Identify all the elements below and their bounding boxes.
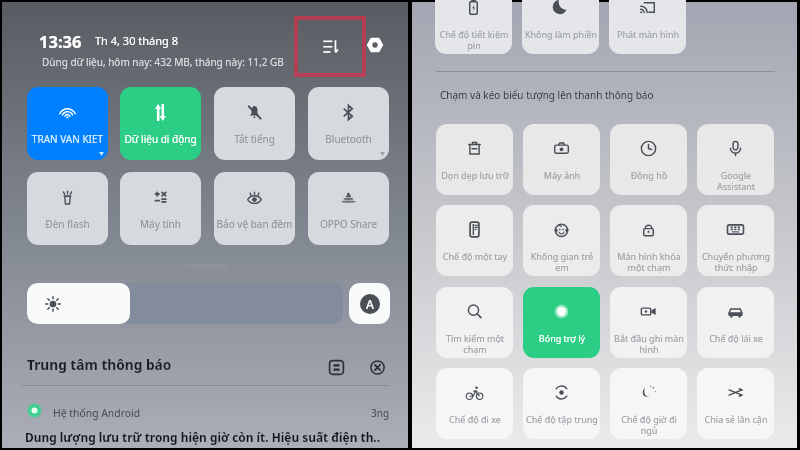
staticText: Dung lượng lưu trữ trong hiện giờ còn ít…: [25, 429, 381, 445]
staticText: 13:36: [39, 30, 82, 52]
staticText: Chuyển phương thức nhập: [698, 250, 774, 273]
button[interactable]: Đèn flash: [27, 172, 108, 245]
staticText: A: [366, 296, 374, 312]
staticText: Phát màn hình: [610, 28, 686, 40]
staticText: Đồng hồ: [611, 169, 687, 181]
button[interactable]: Tắt tiếng: [214, 87, 295, 160]
staticText: Hệ thống Android: [53, 406, 141, 420]
button[interactable]: Chế độ đi xe: [436, 368, 513, 439]
button[interactable]: Chế độ lái xe: [697, 287, 774, 358]
button[interactable]: Máy ảnh: [523, 124, 600, 195]
staticText: Chế độ tiết kiệm pin: [436, 28, 512, 51]
button[interactable]: Màn hình khóa một chạm: [610, 205, 687, 276]
button[interactable]: Phát màn hình: [609, 0, 686, 54]
button[interactable]: Độ sáng tự động: [349, 283, 390, 324]
button[interactable]: Không làm phiền: [522, 0, 599, 54]
button[interactable]: Dọn dẹp lưu trữ: [436, 124, 513, 195]
staticText: Dữ liệu di động: [120, 132, 201, 146]
button[interactable]: [27, 283, 343, 324]
staticText: Chế độ một tay: [437, 250, 513, 262]
staticText: Chế độ lái xe: [698, 332, 774, 344]
staticText: Th 4, 30 tháng 8: [95, 33, 178, 48]
staticText: Màn hình khóa một chạm: [611, 250, 687, 273]
staticText: Máy tính: [120, 217, 201, 231]
button[interactable]: Chế độ tiết kiệm pin: [435, 0, 512, 54]
button[interactable]: Chia sẻ lân cận: [697, 368, 774, 439]
staticText: Đèn flash: [27, 217, 108, 231]
staticText: Máy ảnh: [524, 169, 600, 181]
staticText: TRAN VAN KIET: [27, 132, 108, 146]
button[interactable]: Chuyển phương thức nhập: [697, 205, 774, 276]
staticText: Google Assistant: [698, 169, 774, 192]
staticText: 3ng: [371, 406, 390, 420]
staticText: Trung tâm thông báo: [27, 355, 172, 374]
button[interactable]: Đồng hồ: [610, 124, 687, 195]
button[interactable]: Chế độ một tay: [436, 205, 513, 276]
staticText: Bắt đầu ghi màn hình: [611, 332, 687, 355]
button[interactable]: Không gian trẻ em: [523, 205, 600, 276]
button[interactable]: Tìm kiếm một chạm: [436, 287, 513, 358]
button[interactable]: Dữ liệu di động: [120, 87, 201, 160]
staticText: Bảo vệ ban đêm: [214, 217, 295, 231]
button[interactable]: Chế độ giờ đi ngủ: [610, 368, 687, 439]
staticText: Không làm phiền: [523, 28, 599, 40]
staticText: Bluetooth: [308, 132, 389, 146]
button[interactable]: Cài đặt: [365, 35, 385, 55]
staticText: Chạm và kéo biểu tượng lên thanh thông b…: [440, 88, 654, 102]
staticText: Tìm kiếm một chạm: [437, 332, 513, 355]
button[interactable]: Bảo vệ ban đêm: [214, 172, 295, 245]
button[interactable]: Hệ thống Android: [22, 392, 390, 450]
staticText: Chế độ giờ đi ngủ: [611, 413, 687, 436]
staticText: Chế độ đi xe: [437, 413, 513, 425]
staticText: Chế độ tập trung: [524, 413, 600, 425]
staticText: Chia sẻ lân cận: [698, 413, 774, 425]
staticText: Bóng trợ lý: [524, 332, 600, 344]
button[interactable]: Sắp xếp: [296, 18, 364, 75]
staticText: Dọn dẹp lưu trữ: [437, 169, 513, 181]
button[interactable]: OPPO Share: [308, 172, 389, 245]
button[interactable]: Bluetooth: [308, 87, 389, 160]
button[interactable]: Máy tính: [120, 172, 201, 245]
button[interactable]: TRAN VAN KIET: [27, 87, 108, 160]
staticText: Dùng dữ liệu, hôm nay: 432 MB, tháng này…: [42, 55, 284, 69]
button[interactable]: Bắt đầu ghi màn hình: [610, 287, 687, 358]
button[interactable]: Google Assistant: [697, 124, 774, 195]
button[interactable]: Chế độ tập trung: [523, 368, 600, 439]
staticText: Không gian trẻ em: [524, 250, 600, 273]
button[interactable]: Cài đặt thông báo: [324, 355, 348, 379]
button[interactable]: Xóa tất cả: [365, 355, 389, 379]
button[interactable]: Bóng trợ lý: [523, 287, 600, 358]
staticText: OPPO Share: [308, 217, 389, 231]
staticText: Tắt tiếng: [214, 132, 295, 146]
